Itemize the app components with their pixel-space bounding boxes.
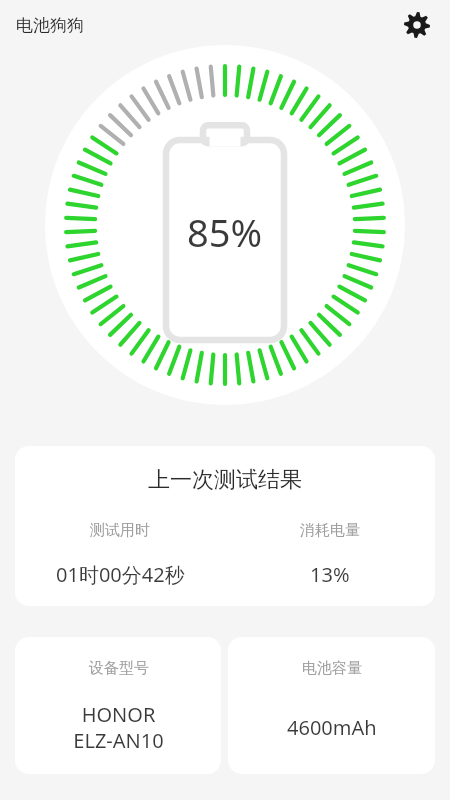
staticText: 设备型号 bbox=[89, 659, 149, 678]
button[interactable]: Settings bbox=[398, 6, 436, 44]
staticText: 01时00分42秒 bbox=[56, 561, 185, 588]
button[interactable]: 电池容量 bbox=[228, 637, 435, 774]
staticText: 测试用时 bbox=[90, 521, 150, 540]
staticText: 消耗电量 bbox=[300, 521, 360, 540]
staticText: 电池容量 bbox=[302, 659, 362, 678]
staticText: 上一次测试结果 bbox=[148, 466, 302, 494]
button[interactable]: 设备型号 bbox=[15, 637, 221, 774]
staticText: 13% bbox=[310, 561, 350, 588]
button[interactable]: 上一次测试结果 bbox=[15, 446, 435, 606]
staticText: HONOR ELZ-AN10 bbox=[73, 701, 164, 754]
staticText: 4600mAh bbox=[287, 714, 377, 741]
staticText: 电池狗狗 bbox=[16, 15, 84, 36]
staticText: 85% bbox=[187, 206, 263, 258]
